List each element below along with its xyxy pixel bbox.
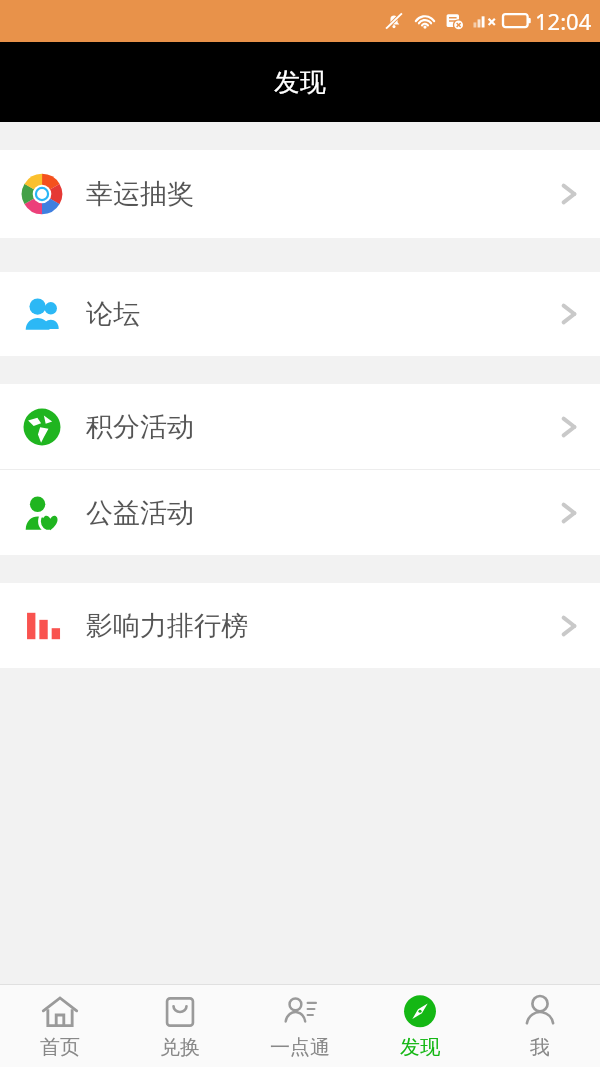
button[interactable]: 影响力排行榜 [0,583,600,668]
button[interactable]: 积分活动 [0,384,600,469]
other: 一点通 [281,993,319,1031]
button[interactable]: 我 [480,985,600,1067]
button[interactable]: 兑换 [120,985,240,1067]
staticText: 12:04 [535,6,592,36]
button[interactable]: 首页 [0,985,120,1067]
staticText: 一点通 [270,1035,330,1060]
staticText: 首页 [40,1035,80,1060]
staticText: 公益活动 [86,496,194,530]
staticText: 发现 [274,66,326,99]
staticText: 论坛 [86,297,140,331]
staticText: 影响力排行榜 [86,609,248,643]
button[interactable]: 论坛 [0,272,600,356]
button[interactable]: 发现 [360,985,480,1067]
staticText: 我 [530,1035,550,1060]
other: 我 [521,993,559,1031]
staticText: 幸运抽奖 [86,177,194,211]
other: 发现 [401,993,439,1031]
button[interactable]: 公益活动 [0,470,600,555]
other: 兑换 [161,993,199,1031]
staticText: 积分活动 [86,410,194,444]
button[interactable]: 一点通 [240,985,360,1067]
button[interactable]: 幸运抽奖 [0,150,600,238]
other: 首页 [41,993,79,1031]
staticText: 发现 [400,1035,440,1060]
staticText: 兑换 [160,1035,200,1060]
